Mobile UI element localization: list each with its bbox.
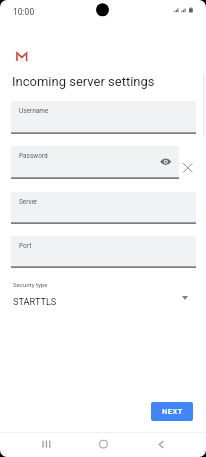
button[interactable]: Server bbox=[11, 192, 196, 224]
button[interactable]: Password bbox=[11, 146, 179, 179]
other: Gmail bbox=[15, 51, 29, 62]
button[interactable]: Home bbox=[93, 434, 114, 455]
button[interactable]: Username bbox=[11, 101, 196, 134]
button[interactable]: Show password bbox=[158, 153, 174, 169]
staticText: STARTTLS bbox=[13, 296, 57, 307]
staticText: Password bbox=[19, 152, 48, 160]
button[interactable]: Clear bbox=[181, 161, 195, 175]
staticText: Port bbox=[19, 242, 32, 250]
button[interactable]: Port bbox=[11, 236, 196, 268]
button[interactable]: NEXT bbox=[151, 402, 193, 421]
staticText: Server bbox=[19, 198, 38, 206]
staticText: Username bbox=[19, 107, 49, 115]
staticText: Security type bbox=[13, 281, 48, 288]
button[interactable]: Back bbox=[150, 434, 171, 455]
button[interactable]: Security type bbox=[10, 279, 196, 309]
staticText: NEXT bbox=[162, 407, 183, 416]
staticText: 10:00 bbox=[13, 7, 35, 17]
button[interactable]: Recent apps bbox=[36, 434, 57, 455]
staticText: Incoming server settings bbox=[12, 74, 155, 89]
